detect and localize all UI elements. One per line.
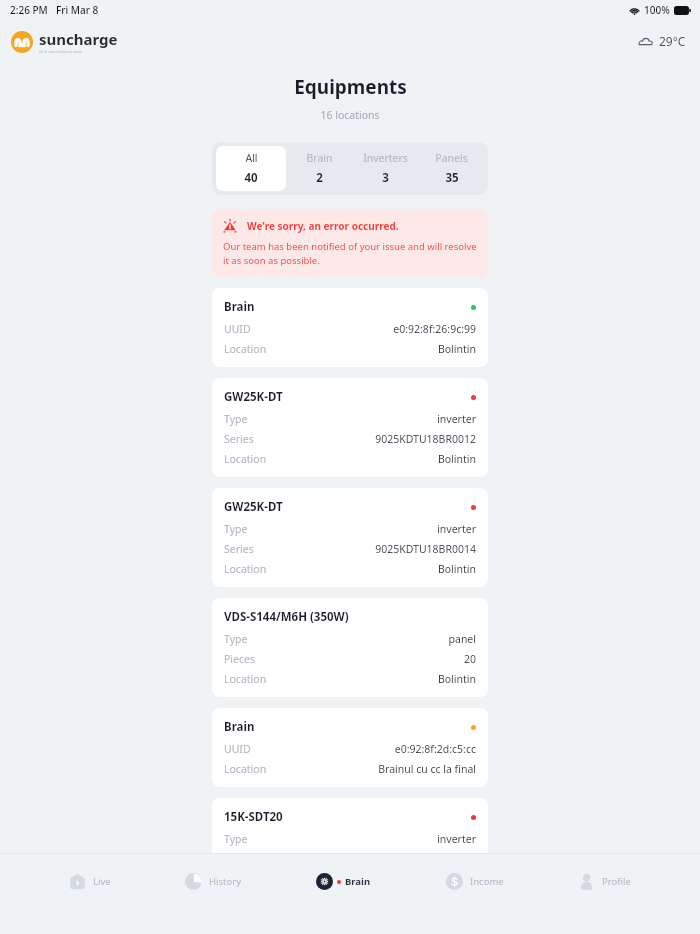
staticText: Type — [224, 412, 248, 426]
staticText: inverter — [437, 522, 476, 536]
staticText: We're sorry, an error occurred. — [247, 219, 399, 233]
staticText: UUID — [224, 742, 251, 756]
button[interactable]: Inverters — [352, 146, 418, 191]
staticText: Inverters — [363, 151, 408, 165]
staticText: De la casa mai buna acasă — [39, 49, 83, 54]
staticText: Brain — [306, 151, 333, 165]
staticText: Equipments — [294, 74, 407, 100]
staticText: Bolintin — [437, 562, 476, 576]
staticText: Pieces — [224, 652, 255, 666]
staticText: suncharge — [39, 29, 118, 49]
staticText: Brainul cu cc la final — [378, 762, 476, 776]
button[interactable]: History — [179, 867, 247, 896]
button[interactable]: 29°C — [638, 33, 686, 49]
staticText: Income — [470, 875, 504, 888]
staticText: Brain — [345, 875, 371, 888]
button[interactable]: Income — [440, 867, 510, 896]
staticText: Series — [224, 432, 254, 446]
button[interactable]: suncharge — [11, 29, 118, 54]
staticText: History — [209, 875, 241, 888]
staticText: 16 locations — [320, 108, 380, 122]
staticText: 40 — [244, 170, 258, 186]
button[interactable]: Brain — [212, 708, 488, 787]
button[interactable]: GW25K-DT — [212, 378, 488, 477]
staticText: Brain — [224, 299, 255, 315]
other: Error — [223, 219, 237, 233]
staticText: Bolintin — [437, 672, 476, 686]
staticText: 2 — [316, 170, 323, 186]
button[interactable]: VDS-S144/M6H (350W) — [212, 598, 488, 697]
staticText: Location — [224, 562, 267, 576]
staticText: Bolintin — [437, 342, 476, 356]
staticText: Location — [224, 452, 267, 466]
staticText: 9025KDTU18BR0014 — [375, 542, 476, 556]
button[interactable]: Profile — [572, 867, 637, 896]
button[interactable]: GW25K-DT — [212, 488, 488, 587]
staticText: 100% — [644, 3, 670, 17]
staticText: GW25K-DT — [224, 499, 283, 515]
other: History — [185, 873, 202, 890]
button[interactable]: 15K-SDT20 — [212, 798, 488, 897]
staticText: Live — [93, 875, 111, 888]
staticText: Type — [224, 832, 248, 846]
staticText: Brainul cu cc la final — [378, 872, 476, 886]
staticText: 35 — [445, 170, 459, 186]
staticText: UUID — [224, 322, 251, 336]
other: Profile — [578, 873, 595, 890]
button[interactable]: Brain — [310, 867, 377, 896]
staticText: 15K-SDT20 — [224, 809, 283, 825]
staticText: Our team has been notified of your issue… — [223, 240, 477, 267]
staticText: e0:92:8f:2d:c5:cc — [394, 742, 476, 756]
staticText: inverter — [437, 832, 476, 846]
staticText: Brain — [224, 719, 255, 735]
staticText: panel — [448, 632, 476, 646]
button[interactable]: Brain — [212, 288, 488, 367]
staticText: 2:26 PM — [10, 3, 48, 17]
staticText: 9025KDTU18BR0012 — [375, 432, 476, 446]
staticText: 29°C — [659, 33, 686, 49]
staticText: GW25K-DT — [224, 389, 283, 405]
button[interactable]: Live — [63, 867, 117, 896]
staticText: Series — [224, 542, 254, 556]
staticText: Location — [224, 872, 267, 886]
staticText: Series — [224, 852, 254, 866]
staticText: Panels — [435, 151, 468, 165]
staticText: Type — [224, 632, 248, 646]
staticText: Bolintin — [437, 452, 476, 466]
button[interactable]: Brain — [286, 146, 352, 191]
staticText: Profile — [602, 875, 631, 888]
staticText: Fri Mar 8 — [56, 3, 99, 17]
other: Income — [446, 873, 463, 890]
staticText: Location — [224, 762, 267, 776]
staticText: All — [245, 151, 258, 165]
staticText: 3 — [382, 170, 389, 186]
staticText: Type — [224, 522, 248, 536]
staticText: Location — [224, 342, 267, 356]
staticText: e0:92:8f:26:9c:99 — [393, 322, 476, 336]
other: Brain — [316, 873, 333, 890]
other: Live — [69, 873, 86, 890]
staticText: 5015KDTB236W0127 — [373, 852, 476, 866]
button[interactable]: All — [216, 146, 286, 191]
staticText: Location — [224, 672, 267, 686]
staticText: inverter — [437, 412, 476, 426]
staticText: 20 — [463, 652, 476, 666]
button[interactable]: Panels — [418, 146, 484, 191]
staticText: VDS-S144/M6H (350W) — [224, 609, 349, 625]
